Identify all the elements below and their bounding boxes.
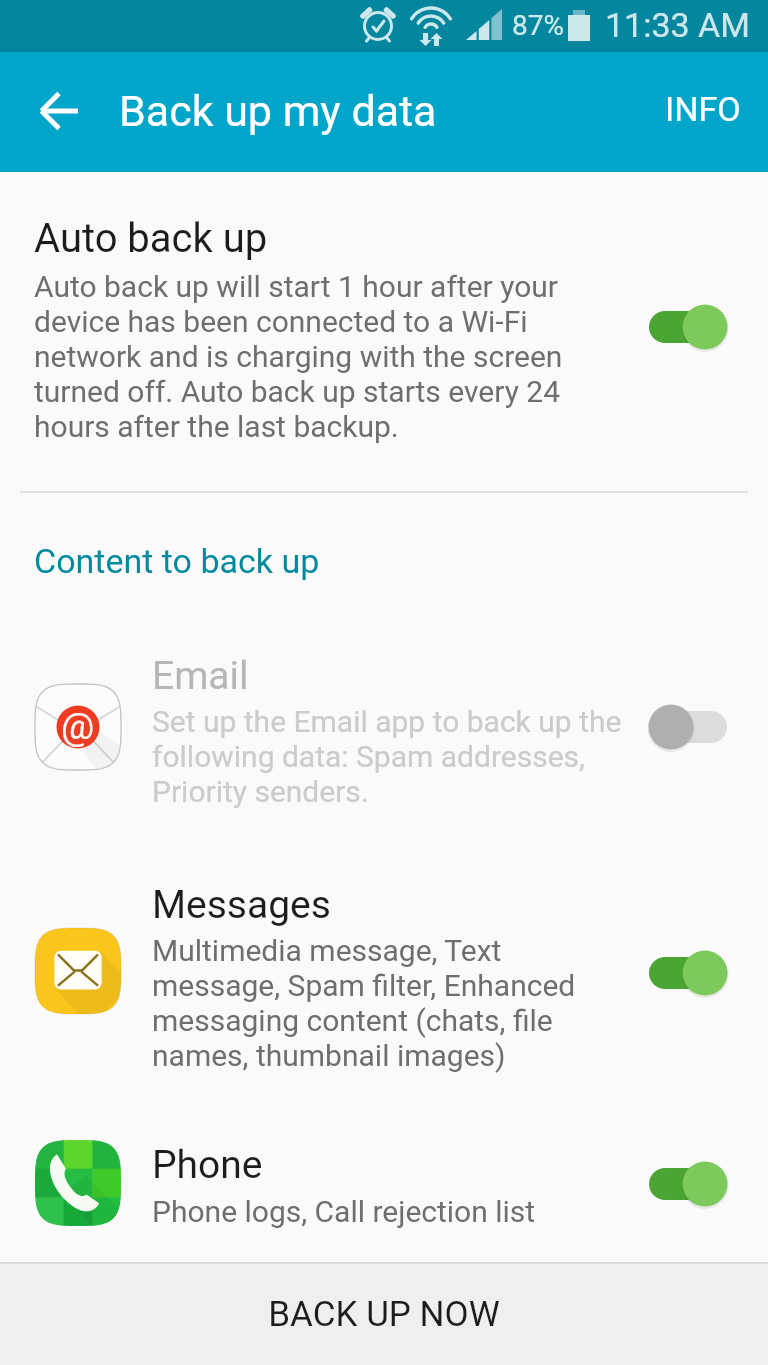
staticText: Phone logs, Call rejection list <box>152 1194 632 1229</box>
button[interactable]: Phone backup <box>645 1153 749 1215</box>
button[interactable]: Auto back up <box>0 172 768 492</box>
button[interactable]: Navigate up <box>26 78 94 146</box>
button[interactable]: @ <box>0 620 768 832</box>
button[interactable]: Messages backup <box>645 942 749 1004</box>
staticText: BACK UP NOW <box>268 1294 500 1335</box>
staticText: Messages <box>152 882 331 928</box>
button[interactable]: INFO <box>647 78 759 140</box>
button[interactable]: Phone <box>0 1112 768 1262</box>
button[interactable]: BACK UP NOW <box>0 1264 768 1365</box>
staticText: Multimedia message, Text message, Spam f… <box>152 933 602 1073</box>
staticText: 87% <box>512 9 564 42</box>
staticText: Set up the Email app to back up the foll… <box>152 704 632 809</box>
staticText: 11:33 AM <box>605 5 750 45</box>
staticText: INFO <box>665 89 741 129</box>
staticText: Phone <box>152 1142 263 1188</box>
staticText: Auto back up will start 1 hour after you… <box>34 269 589 444</box>
button[interactable]: Email backup <box>645 696 749 758</box>
staticText: @ <box>61 705 95 748</box>
staticText: Auto back up <box>34 215 268 262</box>
staticText: Back up my data <box>119 86 437 136</box>
staticText: Email <box>152 653 249 699</box>
button[interactable]: Auto back up <box>645 296 749 358</box>
staticText: Content to back up <box>34 541 320 581</box>
button[interactable]: Messages <box>0 850 768 1112</box>
